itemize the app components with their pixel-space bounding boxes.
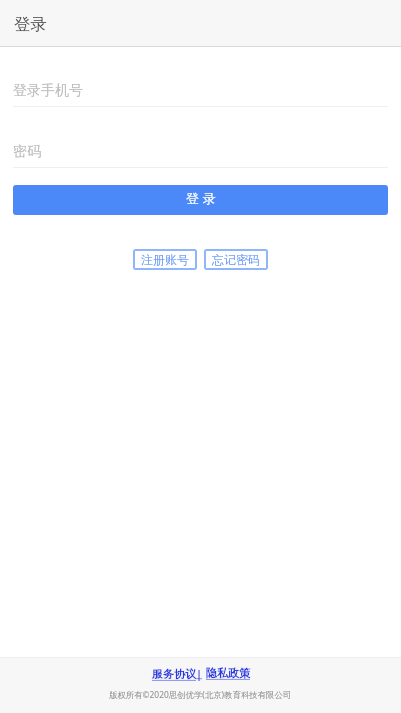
button[interactable]: 忘记密码 <box>204 249 268 270</box>
staticText: 密码 <box>13 143 41 161</box>
staticText: 忘记密码 <box>212 252 260 267</box>
button[interactable]: 登 录 <box>13 185 388 215</box>
button[interactable]: 密码 <box>13 131 388 168</box>
button[interactable]: 隐私政策 <box>206 666 250 680</box>
staticText: 注册账号 <box>141 252 189 267</box>
staticText: 登录手机号 <box>13 82 83 100</box>
staticText: 版权所有©2020思创优学(北京)教育科技有限公司 <box>109 689 292 700</box>
button[interactable]: 服务协议| <box>152 666 203 681</box>
button[interactable]: 登录手机号 <box>13 70 388 107</box>
button[interactable]: 注册账号 <box>133 249 197 270</box>
staticText: 登 录 <box>186 189 216 207</box>
staticText: 登录 <box>14 14 47 35</box>
